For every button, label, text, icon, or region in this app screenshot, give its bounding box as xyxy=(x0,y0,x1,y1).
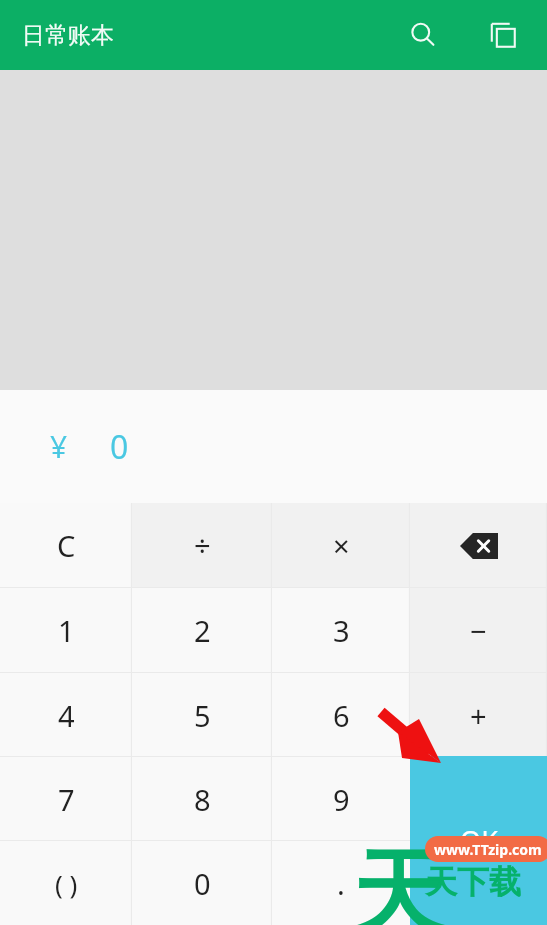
button[interactable]: 8 xyxy=(132,757,272,841)
staticText: 3 xyxy=(333,611,350,650)
button[interactable]: ÷ xyxy=(132,503,272,588)
button[interactable]: C xyxy=(0,503,132,588)
button[interactable]: Backspace xyxy=(410,503,547,588)
button[interactable]: + xyxy=(410,673,547,757)
staticText: . xyxy=(337,864,345,903)
button[interactable]: Switch books xyxy=(477,9,529,61)
staticText: ÷ xyxy=(194,526,211,565)
button[interactable]: × xyxy=(272,503,410,588)
button[interactable]: 5 xyxy=(132,673,272,757)
staticText: 9 xyxy=(333,780,350,819)
staticText: www.TTzip.com xyxy=(434,840,542,859)
button[interactable]: 1 xyxy=(0,588,132,673)
staticText: 8 xyxy=(194,780,211,819)
staticText: 天 xyxy=(352,836,444,925)
button[interactable]: . xyxy=(272,841,410,925)
staticText: + xyxy=(470,696,487,735)
staticText: 7 xyxy=(58,780,75,819)
button[interactable]: Search xyxy=(397,9,449,61)
staticText: 天下载 xyxy=(425,862,521,902)
staticText: − xyxy=(470,611,487,650)
staticText: ¥ xyxy=(50,426,68,467)
staticText: 5 xyxy=(194,696,211,735)
button[interactable]: 9 xyxy=(272,757,410,841)
button[interactable]: − xyxy=(410,588,547,673)
staticText: OK xyxy=(460,822,498,859)
staticText: C xyxy=(57,526,76,565)
button[interactable]: OK xyxy=(410,756,547,925)
staticText: × xyxy=(333,526,350,565)
button[interactable]: 2 xyxy=(132,588,272,673)
staticText: 1 xyxy=(58,611,75,650)
button[interactable]: 4 xyxy=(0,673,132,757)
other: Backspace xyxy=(410,503,547,588)
button[interactable]: 6 xyxy=(272,673,410,757)
staticText: ( ) xyxy=(55,866,78,901)
button[interactable]: 3 xyxy=(272,588,410,673)
staticText: 0 xyxy=(110,425,129,469)
button[interactable]: 0 xyxy=(132,841,272,925)
staticText: 日常账本 xyxy=(22,21,114,50)
button[interactable]: ( ) xyxy=(0,841,132,925)
staticText: 0 xyxy=(194,864,211,903)
staticText: 2 xyxy=(194,611,211,650)
staticText: 4 xyxy=(58,696,75,735)
staticText: 6 xyxy=(333,696,350,735)
button[interactable]: 7 xyxy=(0,757,132,841)
